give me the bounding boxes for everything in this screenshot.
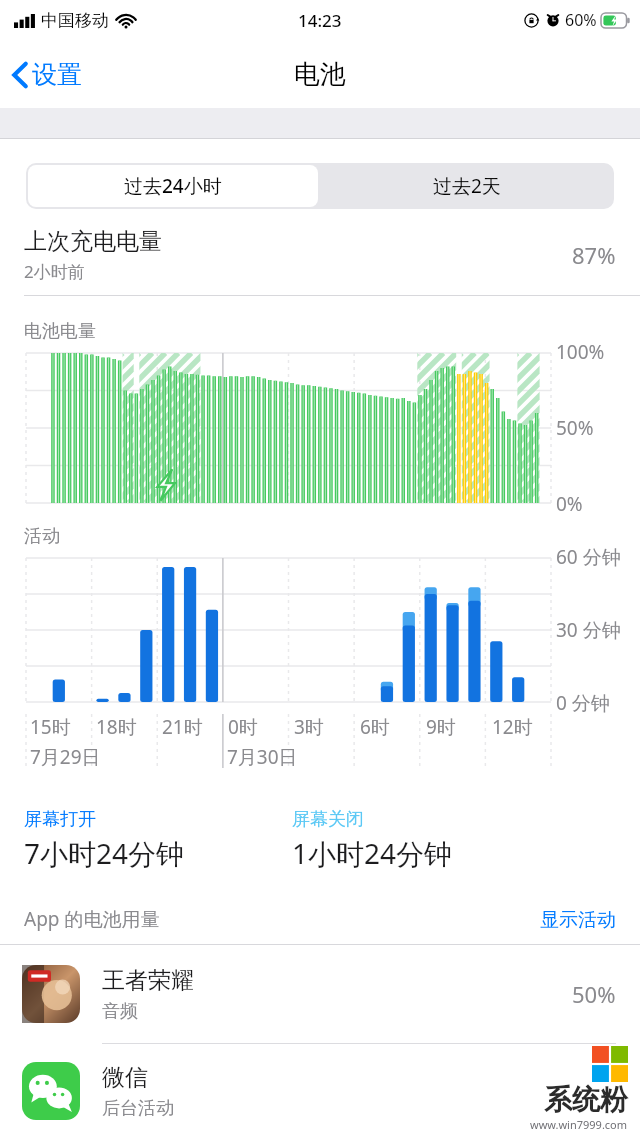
staticText: 7月29日 bbox=[30, 744, 101, 770]
staticText: 王者荣耀 bbox=[102, 966, 194, 995]
staticText: 过去24小时 bbox=[124, 173, 222, 199]
staticText: 后台活动 bbox=[102, 1097, 174, 1120]
staticText: 屏幕关闭 bbox=[292, 808, 364, 831]
staticText: 15时 bbox=[30, 714, 71, 740]
staticText: 18时 bbox=[96, 714, 137, 740]
staticText: 0 分钟 bbox=[556, 690, 610, 716]
staticText: 微信 bbox=[102, 1063, 148, 1092]
staticText: 2小时前 bbox=[24, 260, 85, 283]
button[interactable]: 微信 bbox=[0, 1044, 640, 1138]
staticText: 100% bbox=[556, 339, 605, 365]
staticText: 14:23 bbox=[298, 9, 342, 32]
staticText: 上次充电电量 bbox=[24, 227, 162, 256]
staticText: 6时 bbox=[360, 714, 390, 740]
staticText: 设置 bbox=[32, 59, 82, 90]
staticText: 60 分钟 bbox=[556, 544, 621, 570]
button[interactable]: 过去2天 bbox=[320, 163, 614, 209]
button[interactable]: 王者荣耀 bbox=[0, 945, 640, 1044]
staticText: App 的电池用量 bbox=[24, 906, 540, 932]
staticText: 电池 bbox=[294, 58, 346, 91]
staticText: 活动 bbox=[24, 525, 60, 548]
staticText: 电池电量 bbox=[24, 320, 96, 343]
staticText: 粉 bbox=[600, 1082, 628, 1117]
staticText: 7小时24分钟 bbox=[24, 834, 185, 872]
staticText: 21时 bbox=[162, 714, 203, 740]
staticText: www.win7999.com bbox=[530, 1117, 628, 1132]
staticText: 中国移动 bbox=[41, 10, 109, 31]
staticText: 0时 bbox=[228, 714, 258, 740]
staticText: 1小时24分钟 bbox=[292, 834, 453, 872]
staticText: 系统 bbox=[544, 1082, 600, 1117]
staticText: 30 分钟 bbox=[556, 617, 621, 643]
button[interactable]: 设置 bbox=[0, 51, 94, 98]
staticText: 音频 bbox=[102, 1000, 138, 1023]
button[interactable]: 上次充电电量 bbox=[0, 227, 640, 296]
staticText: 87% bbox=[572, 240, 616, 270]
staticText: 60% bbox=[565, 9, 597, 31]
staticText: 3时 bbox=[294, 714, 324, 740]
staticText: 50% bbox=[556, 415, 594, 441]
staticText: 显示活动 bbox=[540, 908, 616, 932]
button[interactable]: 过去24小时 bbox=[28, 165, 318, 207]
staticText: 50% bbox=[572, 979, 616, 1009]
staticText: 9时 bbox=[426, 714, 456, 740]
staticText: 0% bbox=[556, 491, 583, 517]
button[interactable]: 显示活动 bbox=[540, 908, 616, 932]
staticText: 12时 bbox=[492, 714, 533, 740]
staticText: 7月30日 bbox=[227, 744, 298, 770]
staticText: 过去2天 bbox=[433, 173, 501, 199]
staticText: 屏幕打开 bbox=[24, 808, 96, 831]
